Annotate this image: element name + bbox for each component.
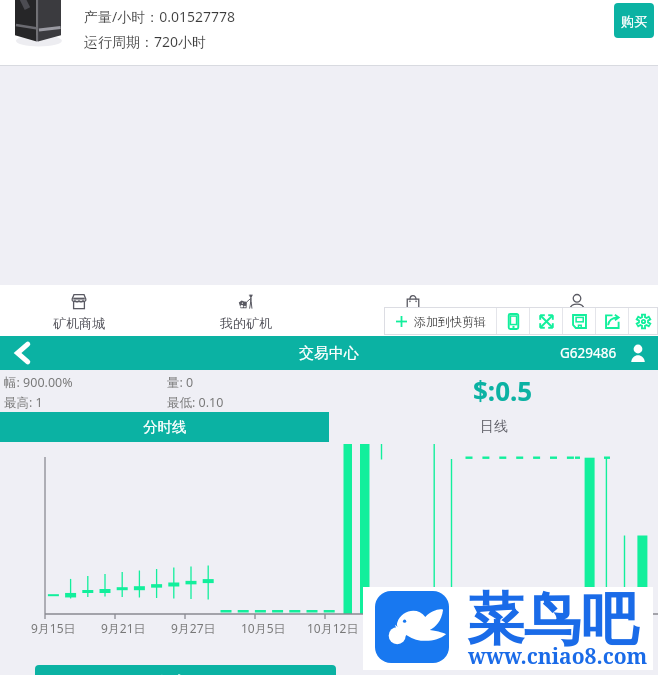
staticText: $:0.5 [473,373,533,408]
staticText: 买入 0.5 [160,671,212,675]
staticText: 10月12日 [307,620,359,636]
button[interactable]: Back [3,336,43,370]
staticText: 分时线 [143,418,187,436]
staticText: 菜鸟吧 [467,584,638,656]
staticText: 交易中心 [299,344,359,363]
button[interactable]: G629486 [560,343,648,363]
button[interactable]: Settings [629,308,657,334]
staticText: 添加到快剪辑 [414,314,486,329]
button[interactable]: 添加到快剪辑 [385,308,496,334]
staticText: 矿机商城 [53,315,105,331]
staticText: www.cniao8.com [468,642,648,671]
staticText: 我的矿机 [220,315,272,331]
staticText: 9月15日 [31,620,76,636]
staticText: 9月21日 [101,620,146,636]
staticText: 产量/小时：0.01527778 [84,7,236,26]
button[interactable]: Tab [331,285,495,336]
button[interactable]: 我的矿机 [164,285,328,336]
button[interactable]: Share [596,308,628,334]
button[interactable]: 日线 [329,412,658,442]
staticText: 9月27日 [171,620,216,636]
staticText: 日线 [480,418,508,436]
staticText: G629486 [560,344,617,362]
button[interactable]: 矿机商城 [0,285,161,336]
staticText: 运行周期：720小时 [84,32,207,51]
button[interactable]: Fullscreen [530,308,562,334]
staticText: 幅: 900.00% [4,374,73,391]
staticText: 购买 [621,13,647,29]
staticText: 10月5日 [241,620,286,636]
button[interactable]: 买入 0.5 [35,665,336,675]
staticText: 最高: 1 [4,394,43,411]
staticText: 最低: 0.10 [167,394,224,411]
button[interactable]: 分时线 [0,412,329,442]
staticText: 量: 0 [167,374,194,391]
button[interactable]: Tab [495,285,658,336]
button[interactable]: Save [563,308,595,334]
button[interactable]: Phone [497,308,529,334]
button[interactable]: 购买 [614,3,654,38]
